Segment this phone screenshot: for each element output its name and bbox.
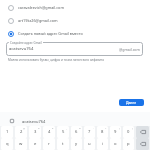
button[interactable]: 9 — [110, 126, 121, 138]
staticText: & — [79, 126, 81, 129]
button[interactable]: y — [71, 138, 82, 150]
staticText: 0 — [127, 129, 130, 135]
button[interactable]: u — [84, 138, 95, 150]
staticText: 6 — [75, 129, 78, 135]
staticText: u — [88, 141, 91, 147]
staticText: q — [6, 141, 9, 147]
staticText: caravaleevich@gmail.com — [18, 5, 64, 10]
button[interactable]: 3 — [29, 126, 41, 138]
staticText: 2 — [20, 129, 23, 135]
button[interactable]: 0 — [123, 126, 134, 138]
staticText: @gmail.com — [119, 47, 140, 52]
staticText: ( — [119, 126, 120, 129]
button[interactable]: Backspace — [136, 138, 149, 150]
button[interactable]: 4 — [43, 126, 55, 138]
button[interactable]: e — [29, 138, 41, 150]
button[interactable]: Backspace — [136, 126, 149, 138]
staticText: i — [102, 141, 104, 147]
staticText: Создать новый адрес Gmail вместо — [18, 31, 83, 36]
button[interactable]: p — [123, 138, 134, 150]
staticText: Далее — [126, 100, 137, 105]
staticText: e — [34, 141, 37, 147]
staticText: ) — [132, 126, 133, 129]
button[interactable]: 1 — [1, 126, 13, 138]
button[interactable]: Clipboard — [10, 119, 14, 123]
button[interactable]: caravaleevich@gmail.com — [0, 1, 150, 14]
staticText: 8 — [101, 129, 104, 135]
button[interactable]: Далее — [119, 99, 144, 106]
staticText: y — [75, 141, 78, 147]
staticText: t — [62, 141, 64, 147]
button[interactable]: o — [110, 138, 121, 150]
staticText: @ — [23, 126, 26, 129]
button[interactable]: 6 — [71, 126, 82, 138]
staticText: # — [38, 126, 40, 129]
button[interactable]: i — [97, 138, 108, 150]
staticText: Можно использовать буквы, цифры и точки … — [8, 58, 104, 62]
staticText: acatsevu764 — [9, 46, 34, 52]
staticText: 4 — [48, 129, 51, 135]
button[interactable]: Создать новый адрес Gmail вместо — [0, 27, 150, 40]
staticText: art19kz26@gmail.com — [18, 18, 58, 23]
button[interactable]: art19kz26@gmail.com — [0, 14, 150, 27]
staticText: acatsevu764 — [22, 119, 46, 124]
staticText: w — [19, 141, 23, 147]
button[interactable]: 2 — [15, 126, 27, 138]
staticText: ₽ — [52, 126, 54, 129]
staticText: r — [48, 141, 50, 147]
button[interactable]: w — [15, 138, 27, 150]
button[interactable]: 7 — [84, 126, 95, 138]
staticText: 1 — [6, 129, 9, 135]
staticText: 5 — [62, 129, 65, 135]
staticText: 7 — [88, 129, 91, 135]
staticText: + — [105, 126, 107, 129]
button[interactable]: 5 — [57, 126, 69, 138]
button[interactable]: 8 — [97, 126, 108, 138]
staticText: 3 — [34, 129, 37, 135]
staticText: p — [127, 141, 130, 147]
staticText: - — [93, 126, 94, 129]
button[interactable]: q — [1, 138, 13, 150]
staticText: 9 — [114, 129, 117, 135]
staticText: Создайте адрес Gmail — [10, 41, 42, 45]
button[interactable]: r — [43, 138, 55, 150]
staticText: o — [114, 141, 117, 147]
button[interactable]: t — [57, 138, 69, 150]
